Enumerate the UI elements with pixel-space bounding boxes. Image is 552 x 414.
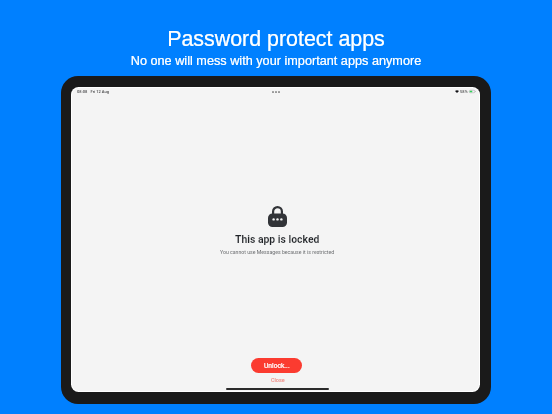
button[interactable]: Unlock... <box>251 358 302 373</box>
button[interactable]: Multitasking controls <box>272 91 280 93</box>
staticText: 08:08 Fri 12 Aug <box>77 89 110 94</box>
button[interactable]: Close <box>267 376 289 384</box>
other: Battery 58 percent <box>469 90 476 93</box>
staticText: No one will mess with your important app… <box>0 54 552 68</box>
staticText: Password protect apps <box>0 27 552 51</box>
staticText: You cannot use Messages because it is re… <box>220 249 335 255</box>
staticText: This app is locked <box>235 233 320 245</box>
other: App locked <box>268 206 287 227</box>
staticText: 58% <box>460 89 468 94</box>
other: Home indicator <box>226 388 329 390</box>
other: Wi-Fi connected <box>455 90 459 93</box>
staticText: Close <box>271 377 285 383</box>
staticText: Unlock... <box>264 362 290 370</box>
